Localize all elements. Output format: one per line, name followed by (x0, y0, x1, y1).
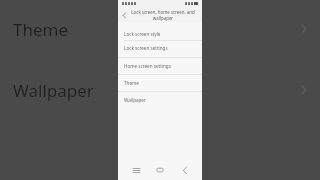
staticText: Wallpaper (124, 97, 146, 103)
button[interactable]: Lock screen settings (118, 41, 202, 54)
button[interactable]: Back (119, 10, 129, 20)
button[interactable]: Wallpaper (118, 92, 202, 108)
staticText: Theme (124, 80, 139, 86)
staticText: Theme (13, 18, 69, 41)
staticText: Wallpaper (13, 79, 94, 102)
staticText: Lock screen settings (124, 45, 168, 51)
staticText: Lock screen, home screen, and wallpaper (130, 9, 196, 21)
button[interactable]: Home screen settings (118, 58, 202, 74)
staticText: Lock screen style (124, 31, 161, 37)
button[interactable]: Back (178, 163, 192, 177)
button[interactable]: Theme (118, 75, 202, 91)
button[interactable]: Lock screen style (118, 27, 202, 40)
staticText: Home screen settings (124, 63, 171, 69)
button[interactable]: Recent apps (129, 163, 143, 177)
button[interactable]: Home (153, 163, 167, 177)
